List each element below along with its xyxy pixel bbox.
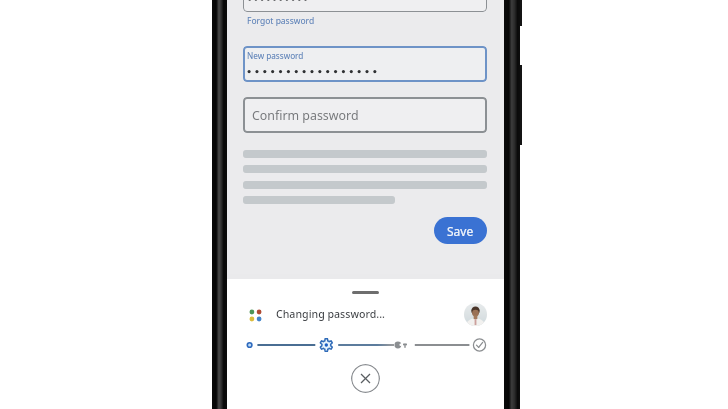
button[interactable]: Forgot password bbox=[247, 15, 315, 27]
button[interactable]: New password bbox=[243, 46, 487, 82]
staticText: Changing password... bbox=[276, 307, 385, 321]
staticText: Forgot password bbox=[247, 15, 315, 27]
button[interactable]: Save bbox=[434, 217, 487, 244]
staticText: Confirm password bbox=[252, 107, 359, 124]
staticText: Save bbox=[447, 223, 474, 239]
button[interactable]: Profile bbox=[464, 303, 487, 326]
staticText: New password bbox=[247, 50, 304, 61]
button[interactable]: Close bbox=[351, 364, 380, 393]
button[interactable]: Confirm password bbox=[243, 97, 487, 133]
